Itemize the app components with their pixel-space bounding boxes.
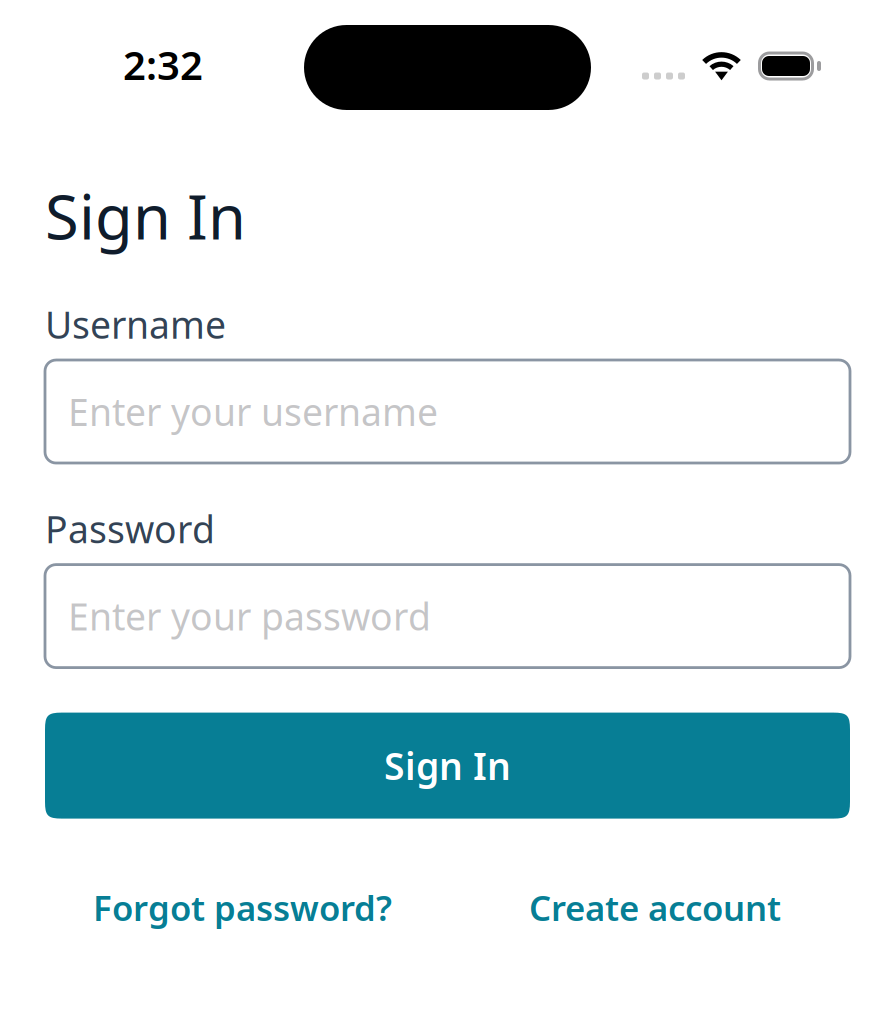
button[interactable]: Enter your password (45, 565, 850, 668)
staticText: 2:32 (123, 38, 203, 91)
button[interactable]: Enter your username (45, 360, 850, 463)
button[interactable]: Create account (519, 869, 791, 947)
button[interactable]: Sign In (45, 713, 850, 819)
staticText: Sign In (384, 741, 511, 790)
staticText: Password (45, 504, 215, 554)
staticText: Create account (529, 885, 781, 931)
staticText: Enter your username (68, 387, 438, 436)
button[interactable]: Forgot password? (83, 869, 402, 947)
staticText: Sign In (45, 175, 246, 256)
staticText: Enter your password (68, 591, 431, 641)
staticText: Forgot password? (93, 885, 392, 931)
staticText: Username (45, 299, 226, 349)
